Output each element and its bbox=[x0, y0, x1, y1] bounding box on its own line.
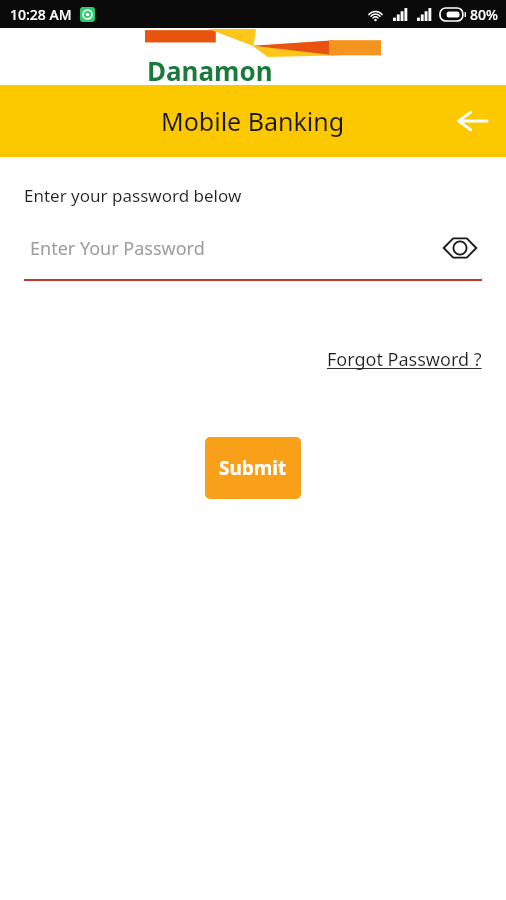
button[interactable]: Show password bbox=[438, 226, 482, 270]
staticText: Forgot Password ? bbox=[327, 347, 482, 372]
staticText: 10:28 AM bbox=[10, 5, 72, 24]
staticText: 80% bbox=[470, 5, 498, 24]
staticText: Danamon bbox=[147, 53, 273, 88]
button[interactable]: Back bbox=[448, 97, 496, 145]
button[interactable]: Forgot Password ? bbox=[325, 343, 484, 376]
button[interactable]: Enter Your Password bbox=[24, 225, 482, 271]
staticText: Enter Your Password bbox=[30, 236, 438, 261]
button[interactable]: Submit bbox=[205, 437, 301, 499]
staticText: Submit bbox=[219, 455, 287, 481]
staticText: Mobile Banking bbox=[161, 104, 345, 138]
staticText: Enter your password below bbox=[24, 184, 242, 207]
